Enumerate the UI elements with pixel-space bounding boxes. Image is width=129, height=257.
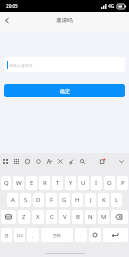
staticText: V: [63, 213, 67, 221]
button[interactable]: A: [7, 193, 18, 207]
button[interactable]: Enter: [103, 228, 128, 242]
button[interactable]: I: [91, 176, 102, 190]
button[interactable]: X: [32, 210, 44, 224]
button[interactable]: L: [111, 193, 122, 207]
button[interactable]: Search: [77, 156, 87, 166]
button[interactable]: T: [52, 176, 63, 190]
button[interactable]: 请输入邀请码: [4, 57, 125, 72]
staticText: W: [16, 179, 22, 187]
button[interactable]: 123: [14, 228, 25, 242]
staticText: K: [102, 196, 106, 204]
button[interactable]: F: [46, 193, 57, 207]
staticText: 空格: [53, 233, 61, 238]
staticText: G: [62, 196, 67, 204]
staticText: J: [90, 196, 92, 204]
staticText: H: [75, 196, 80, 204]
button[interactable]: Z: [18, 210, 30, 224]
staticText: R: [43, 179, 47, 187]
staticText: A: [11, 196, 15, 204]
button[interactable]: Skin: [97, 156, 107, 166]
staticText: .: [80, 233, 82, 238]
staticText: 确定: [60, 88, 70, 94]
staticText: U: [81, 179, 86, 187]
staticText: X: [36, 213, 40, 221]
button[interactable]: V: [59, 210, 70, 224]
button[interactable]: R: [39, 176, 50, 190]
button[interactable]: Shift: [1, 210, 16, 224]
button[interactable]: S: [20, 193, 31, 207]
staticText: Z: [22, 213, 26, 221]
staticText: 符: [5, 233, 9, 238]
button[interactable]: Emoji: [11, 156, 21, 166]
button[interactable]: K: [98, 193, 109, 207]
button[interactable]: Q: [1, 176, 11, 190]
button[interactable]: O: [104, 176, 115, 190]
staticText: B: [76, 213, 80, 221]
button[interactable]: Y: [65, 176, 76, 190]
button[interactable]: D: [33, 193, 44, 207]
staticText: T: [56, 179, 60, 187]
staticText: S: [24, 196, 28, 204]
staticText: I: [95, 179, 98, 187]
button[interactable]: 确定: [4, 84, 125, 97]
button[interactable]: Back: [0, 13, 14, 27]
button[interactable]: Hide keyboard: [116, 156, 126, 166]
staticText: O: [107, 179, 112, 187]
staticText: 20:05: [6, 3, 18, 9]
staticText: 123: [16, 233, 23, 238]
button[interactable]: H: [72, 193, 83, 207]
button[interactable]: Settings: [22, 156, 32, 166]
staticText: 邀请码: [56, 17, 73, 24]
button[interactable]: Clipboard: [55, 156, 65, 166]
button[interactable]: W: [13, 176, 24, 190]
staticText: Q: [4, 179, 9, 187]
button[interactable]: J: [85, 193, 96, 207]
button[interactable]: B: [72, 210, 83, 224]
button[interactable]: G: [59, 193, 70, 207]
staticText: L: [115, 196, 119, 204]
button[interactable]: Backspace: [111, 210, 128, 224]
staticText: C: [50, 213, 54, 221]
button[interactable]: 符: [1, 228, 12, 242]
staticText: 请输入邀请码: [9, 63, 33, 68]
staticText: P: [121, 179, 125, 187]
button[interactable]: Translate: [44, 156, 54, 166]
staticText: N: [88, 213, 93, 221]
button[interactable]: E: [26, 176, 37, 190]
staticText: E: [30, 179, 34, 187]
staticText: Y: [69, 179, 73, 187]
button[interactable]: U: [78, 176, 89, 190]
button[interactable]: 空格: [41, 228, 73, 242]
staticText: M: [101, 213, 107, 221]
button[interactable]: Keyboard layout: [0, 156, 10, 166]
staticText: D: [36, 196, 41, 204]
button[interactable]: ,: [27, 228, 39, 242]
button[interactable]: P: [117, 176, 128, 190]
button[interactable]: Voice: [66, 156, 76, 166]
button[interactable]: N: [85, 210, 96, 224]
staticText: 4G: [108, 3, 115, 10]
button[interactable]: M: [98, 210, 109, 224]
staticText: ,: [32, 233, 34, 238]
button[interactable]: C: [46, 210, 57, 224]
staticText: F: [50, 196, 54, 204]
button[interactable]: Emoji: [89, 228, 101, 242]
button[interactable]: Theme: [33, 156, 43, 166]
